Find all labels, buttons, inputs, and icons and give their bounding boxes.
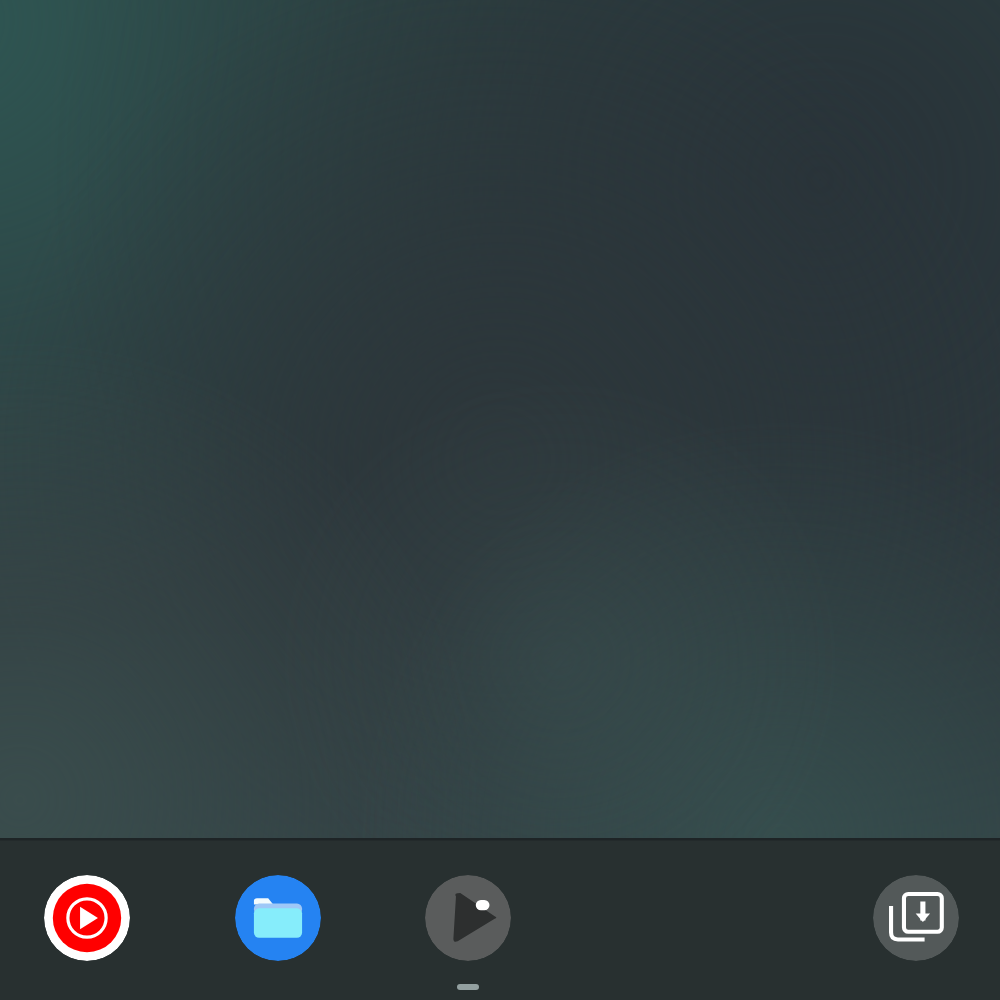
button[interactable]: Play Store [425,875,511,961]
button[interactable]: Save to library [873,875,959,961]
button[interactable]: YouTube Music [44,875,130,961]
button[interactable]: Files [235,875,321,961]
